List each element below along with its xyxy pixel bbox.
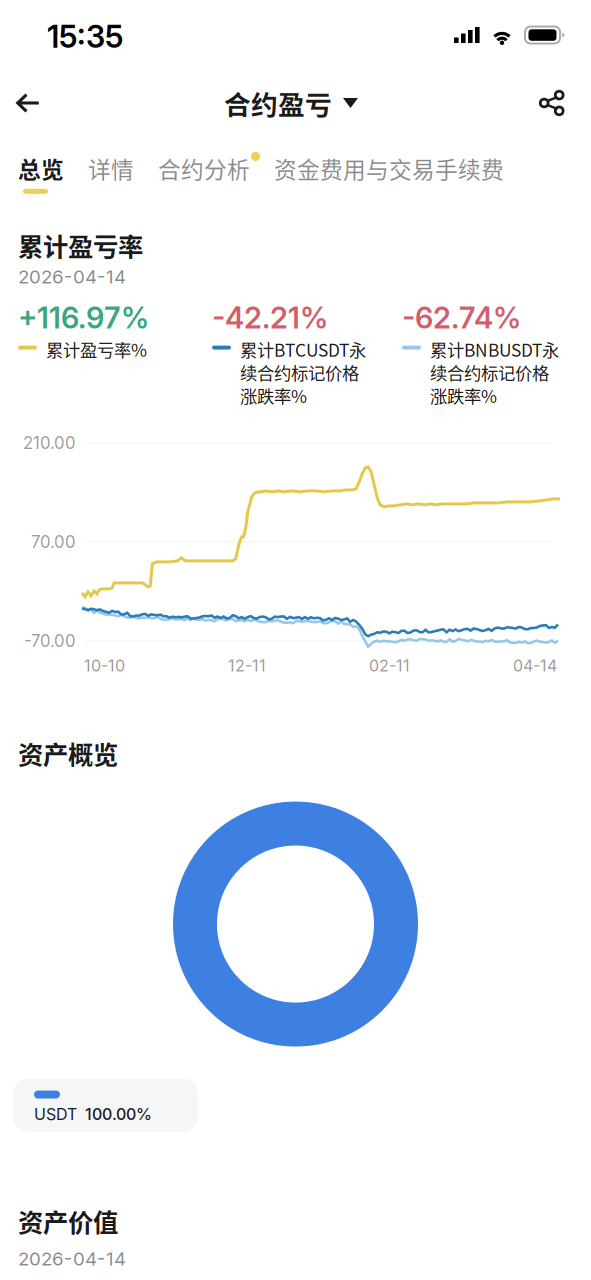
staticText: -70.00 <box>24 631 76 651</box>
staticText: 10-10 <box>84 656 125 675</box>
staticText: 合约分析 <box>158 152 250 185</box>
staticText: 资金费用与交易手续费 <box>274 152 504 185</box>
button[interactable]: 总览 <box>18 152 88 194</box>
staticText: 2026-04-14 <box>18 265 126 288</box>
staticText: USDT <box>34 1105 77 1124</box>
button[interactable]: Share <box>527 78 577 127</box>
staticText: -62.74% <box>402 300 521 336</box>
staticText: 累计BTCUSDT永 <box>240 337 366 362</box>
button[interactable]: 详情 <box>88 152 158 185</box>
staticText: 70.00 <box>31 532 76 552</box>
staticText: 资产概览 <box>18 735 118 772</box>
staticText: 详情 <box>88 152 134 185</box>
staticText: +116.97% <box>18 300 149 336</box>
staticText: 续合约标记价格 <box>430 360 549 385</box>
staticText: 续合约标记价格 <box>240 360 359 385</box>
staticText: 04-14 <box>513 656 557 675</box>
staticText: 累计BNBUSDT永 <box>430 337 559 362</box>
staticText: 12-11 <box>228 656 266 675</box>
staticText: 累计盈亏率% <box>46 337 147 362</box>
staticText: 累计盈亏率 <box>18 227 143 263</box>
staticText: 02-11 <box>369 656 410 675</box>
button[interactable]: Back <box>1 77 55 129</box>
staticText: 涨跌率% <box>240 383 307 408</box>
staticText: 资产价值 <box>18 1203 118 1239</box>
staticText: 210.00 <box>23 433 76 453</box>
staticText: 2026-04-14 <box>18 1247 126 1270</box>
staticText: 总览 <box>18 152 64 185</box>
button[interactable]: 资金费用与交易手续费 <box>274 152 504 185</box>
staticText: 100.00% <box>85 1105 152 1124</box>
staticText: 合约盈亏 <box>224 84 332 122</box>
button[interactable]: 合约盈亏 <box>216 74 366 132</box>
button[interactable]: 合约分析 <box>158 152 274 185</box>
staticText: 15:35 <box>47 18 123 55</box>
staticText: 涨跌率% <box>430 383 497 408</box>
staticText: -42.21% <box>212 300 328 336</box>
